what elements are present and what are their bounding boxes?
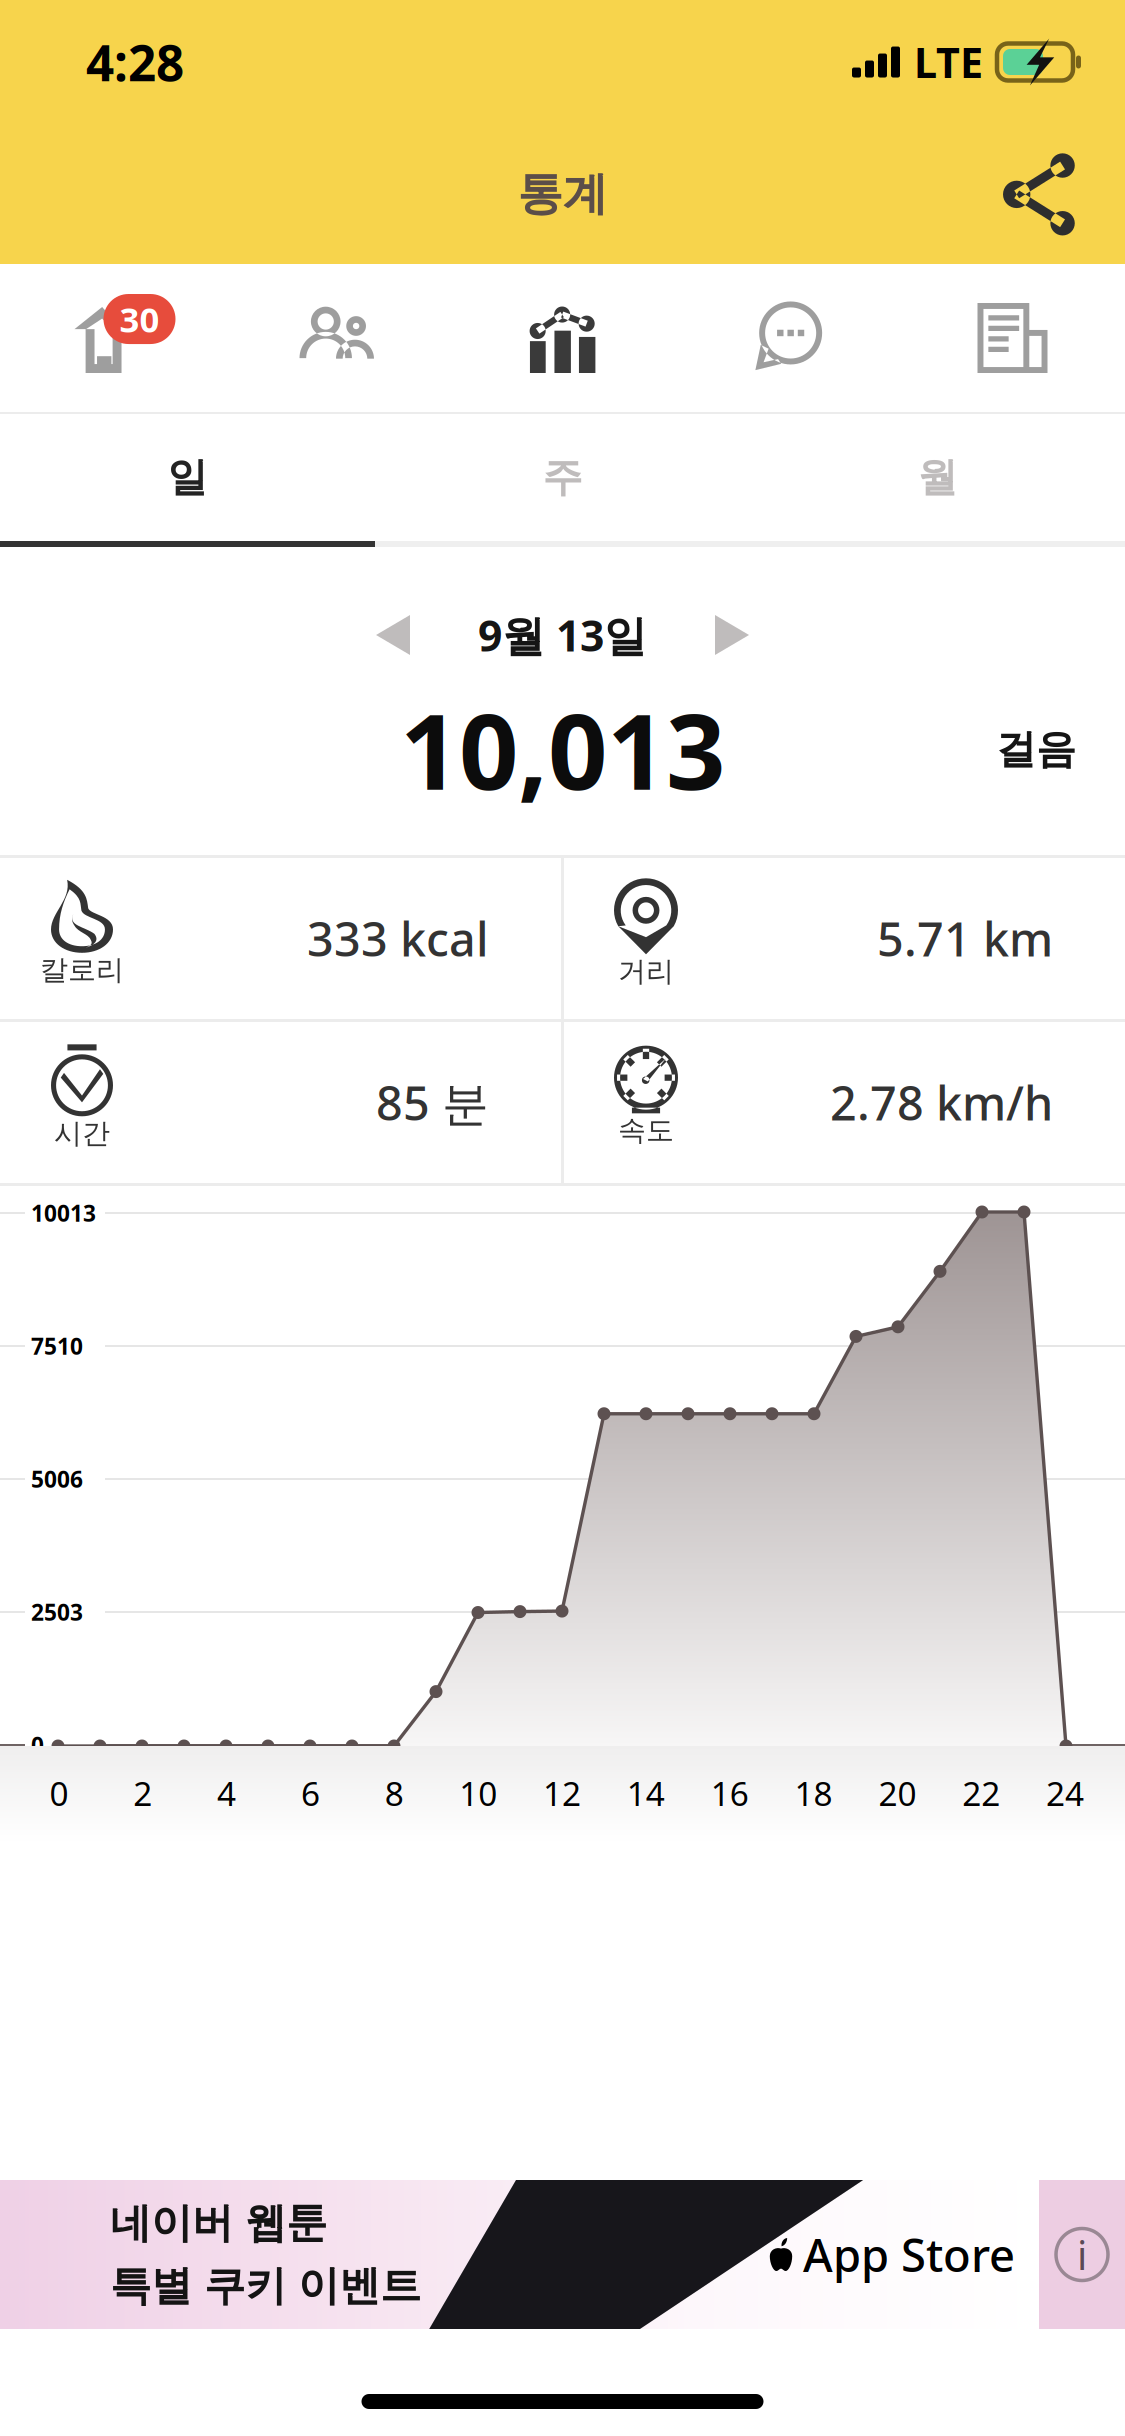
staticText: 0 bbox=[49, 1771, 68, 1815]
staticText: 6 bbox=[301, 1771, 320, 1815]
staticText: 8 bbox=[385, 1771, 404, 1815]
staticText: 333 kcal bbox=[307, 907, 489, 969]
staticText: 85 분 bbox=[376, 1071, 489, 1133]
staticText: 시간 bbox=[54, 1116, 110, 1151]
staticText: 0 bbox=[31, 1730, 44, 1760]
staticText: 월 bbox=[917, 453, 957, 502]
staticText: 5.71 km bbox=[877, 907, 1053, 969]
staticText: 2.78 km/h bbox=[830, 1071, 1053, 1133]
staticText: 속도 bbox=[618, 1113, 674, 1148]
staticText: 5006 bbox=[31, 1464, 83, 1494]
button[interactable]: Statistics bbox=[450, 264, 675, 412]
staticText: 9월 13일 bbox=[478, 607, 647, 663]
staticText: 거리 bbox=[618, 954, 674, 989]
staticText: 24 bbox=[1046, 1771, 1084, 1815]
staticText: 통계 bbox=[517, 166, 607, 222]
staticText: 걸음 bbox=[996, 725, 1076, 774]
staticText: 2 bbox=[133, 1771, 152, 1815]
button[interactable]: Next day bbox=[687, 587, 777, 683]
staticText: 7510 bbox=[31, 1331, 83, 1361]
button[interactable]: Previous day bbox=[348, 587, 438, 683]
staticText: 16 bbox=[711, 1771, 749, 1815]
button[interactable]: Advertisement bbox=[0, 2180, 1125, 2329]
button[interactable]: Friends bbox=[225, 264, 450, 412]
staticText: 4:28 bbox=[86, 29, 184, 95]
button[interactable]: 일 bbox=[0, 414, 375, 541]
staticText: App Store bbox=[803, 2224, 1015, 2285]
staticText: i bbox=[1077, 2228, 1087, 2281]
staticText: 칼로리 bbox=[40, 953, 124, 987]
staticText: 18 bbox=[794, 1771, 832, 1815]
staticText: 2503 bbox=[31, 1597, 83, 1627]
staticText: 14 bbox=[627, 1771, 665, 1815]
staticText: 30 bbox=[119, 296, 159, 342]
staticText: 10,013 bbox=[400, 680, 725, 818]
staticText: 네이버 웹툰 bbox=[110, 2198, 327, 2248]
button[interactable]: Share bbox=[973, 129, 1107, 259]
button[interactable]: 주 bbox=[375, 414, 750, 541]
staticText: 22 bbox=[962, 1771, 1000, 1815]
button[interactable]: Friends home bbox=[0, 264, 225, 412]
staticText: 12 bbox=[543, 1771, 581, 1815]
staticText: 특별 쿠키 이벤트 bbox=[110, 2260, 421, 2311]
button[interactable]: 월 bbox=[750, 414, 1125, 541]
staticText: 10 bbox=[459, 1771, 497, 1815]
staticText: LTE bbox=[914, 35, 983, 89]
button[interactable]: More bbox=[900, 264, 1125, 412]
staticText: 주 bbox=[542, 453, 582, 502]
button[interactable]: Chats bbox=[675, 264, 900, 412]
staticText: 4 bbox=[217, 1771, 236, 1815]
staticText: 10013 bbox=[31, 1198, 96, 1228]
staticText: 20 bbox=[878, 1771, 916, 1815]
staticText: 일 bbox=[167, 453, 207, 502]
